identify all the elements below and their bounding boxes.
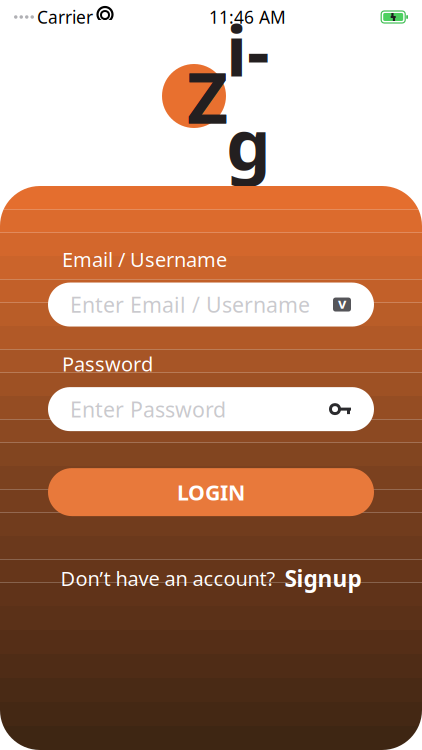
staticText: ig	[226, 2, 271, 190]
staticText: Don’t have an account?	[60, 565, 275, 591]
staticText: v	[338, 293, 346, 313]
staticText: LOGIN	[177, 478, 245, 506]
staticText: Email / Username	[62, 246, 227, 273]
staticText: Z	[187, 49, 228, 143]
staticText: Z	[187, 49, 228, 143]
button[interactable]: Signup	[284, 563, 361, 593]
staticText: Signup	[284, 563, 361, 593]
staticText: Carrier	[37, 5, 93, 28]
button[interactable]: LOGIN	[48, 468, 374, 516]
button[interactable]: Enter Email / Username	[48, 283, 374, 327]
staticText: Enter Email / Username	[70, 290, 310, 319]
staticText: Enter Password	[70, 395, 226, 423]
staticText: 11:46 AM	[209, 5, 286, 28]
button[interactable]: Enter Password	[48, 387, 374, 431]
staticText: Password	[62, 351, 153, 377]
